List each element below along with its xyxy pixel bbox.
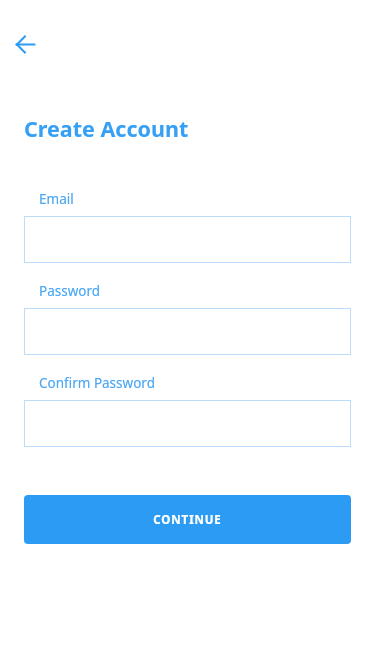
staticText: Email [39, 190, 74, 208]
staticText: Create Account [24, 114, 189, 143]
staticText: Confirm Password [39, 374, 155, 392]
staticText: CONTINUE [153, 512, 222, 528]
button[interactable]: CONTINUE [24, 495, 351, 544]
button[interactable]: Confirm Password input field [24, 400, 351, 447]
button[interactable]: Back [9, 28, 41, 60]
staticText: Password [39, 282, 101, 300]
button[interactable]: Email input field [24, 216, 351, 263]
button[interactable]: Password input field [24, 308, 351, 355]
